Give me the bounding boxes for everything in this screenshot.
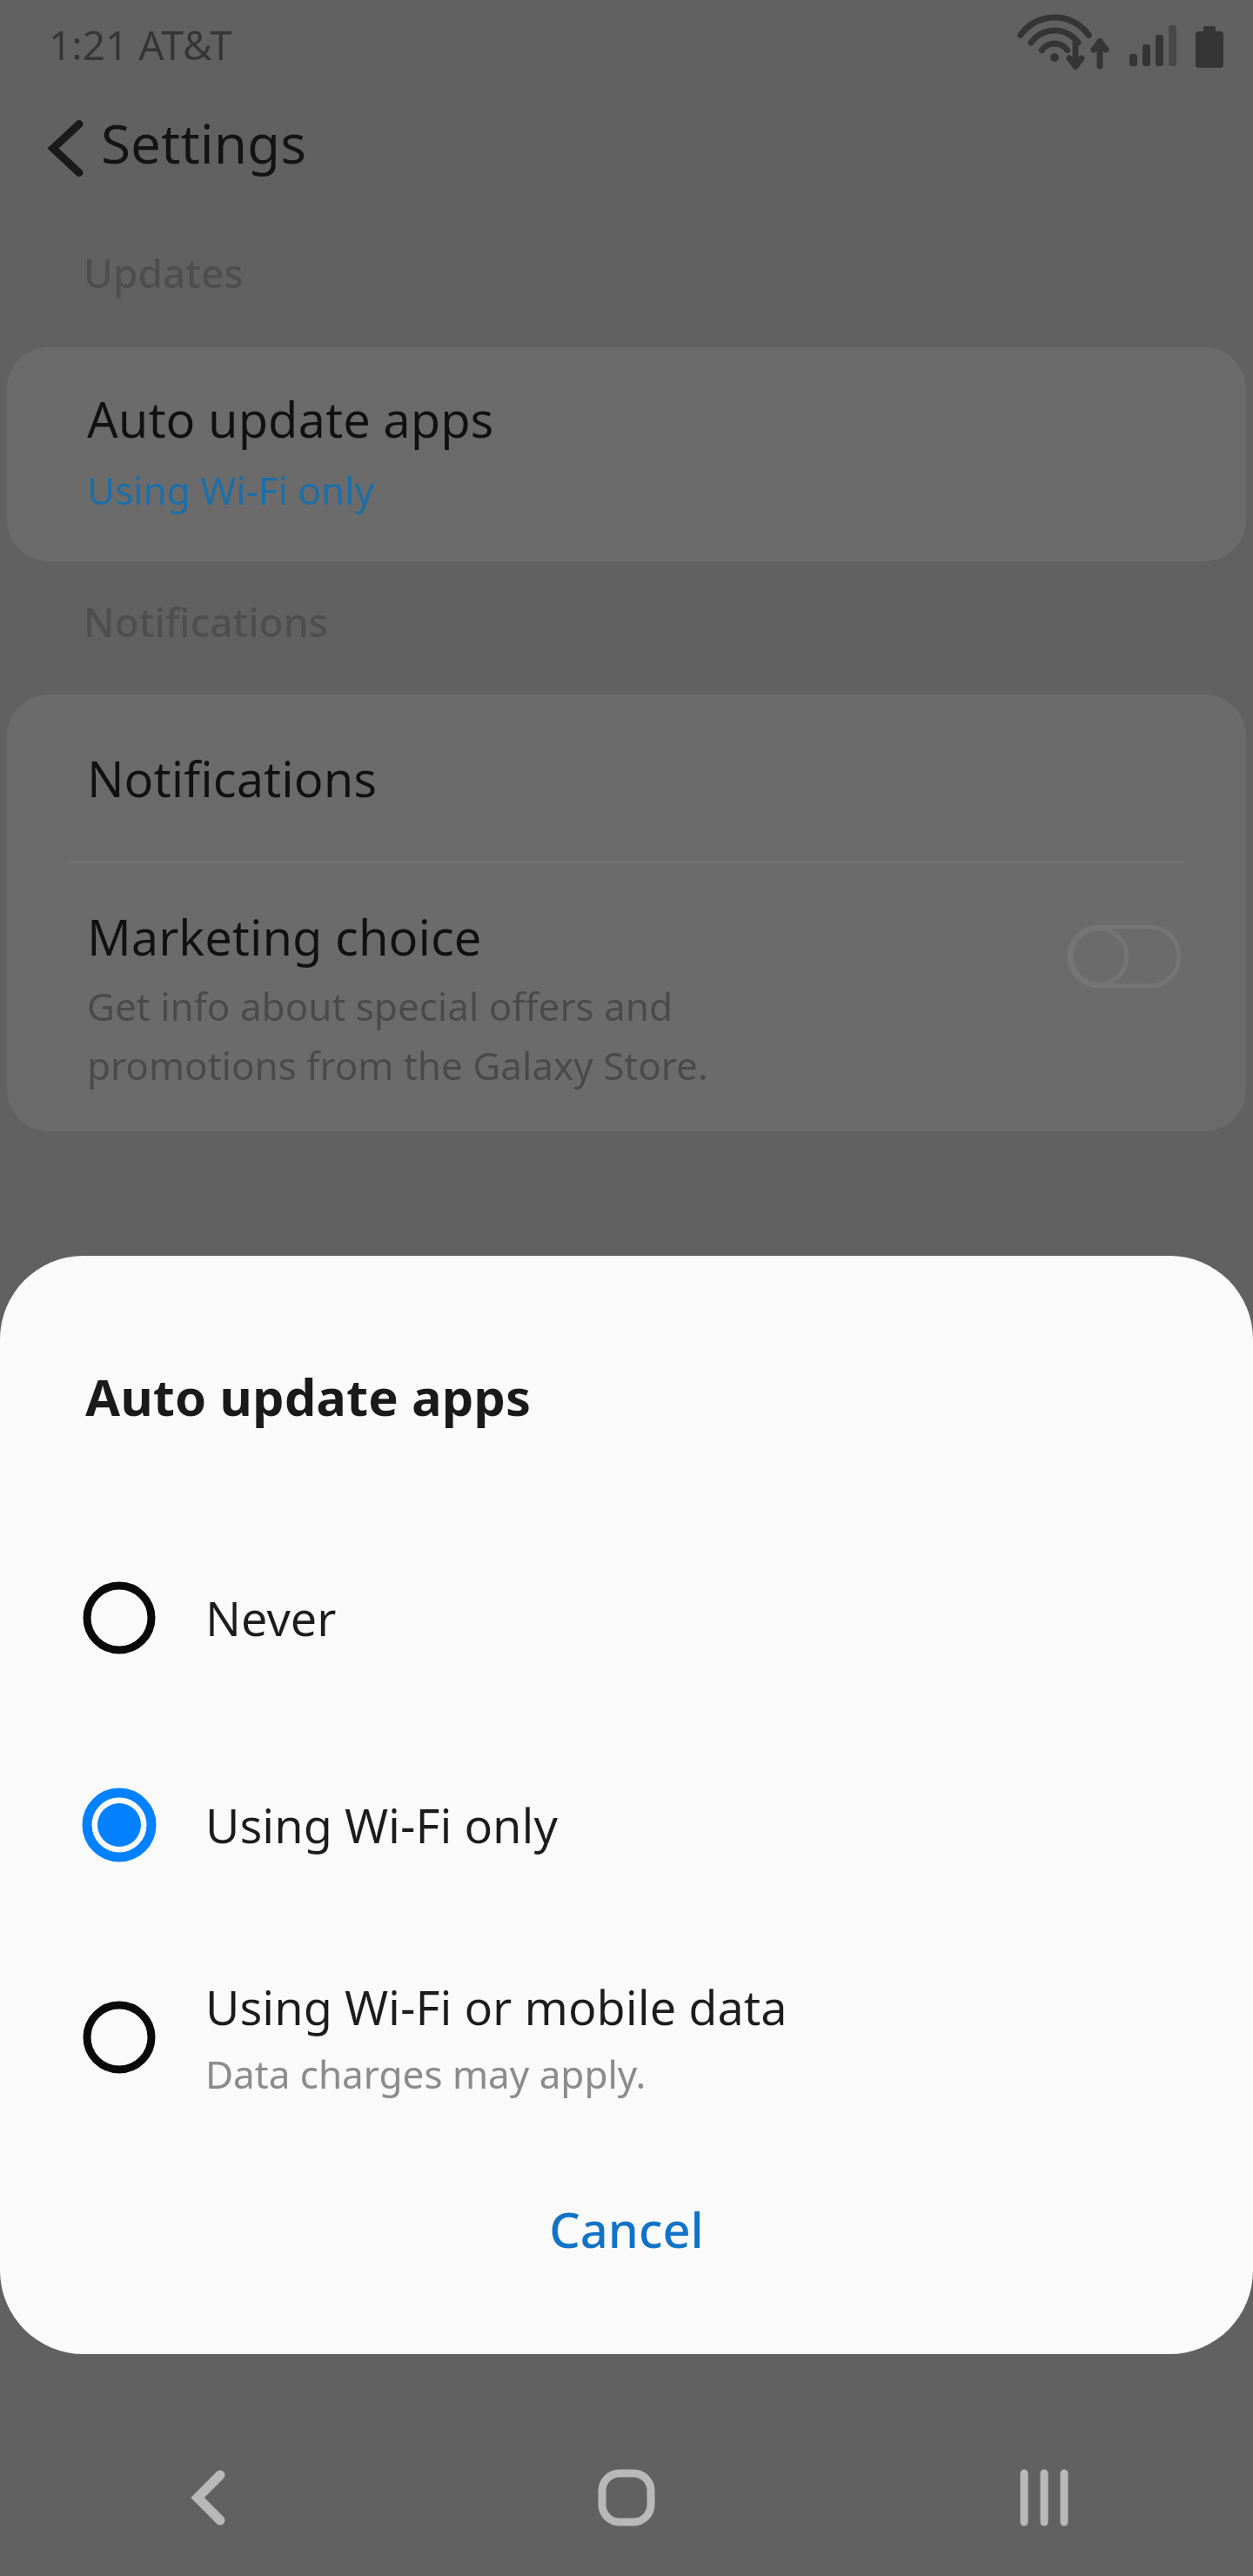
staticText: Auto update apps xyxy=(85,1362,532,1431)
staticText: Notifications xyxy=(87,745,378,811)
button[interactable]: Never xyxy=(0,1514,1253,1721)
staticText: Updates xyxy=(84,245,244,300)
staticText: Auto update apps xyxy=(87,386,494,452)
staticText: Using Wi-Fi only xyxy=(87,464,374,516)
button[interactable]: Home xyxy=(418,2419,835,2576)
other: Marketing choice toggle xyxy=(1055,917,1194,996)
staticText: Using Wi-Fi or mobile data xyxy=(205,1975,787,2039)
staticText: Using Wi-Fi only xyxy=(205,1793,558,1857)
button[interactable]: Using Wi-Fi or mobile data xyxy=(0,1929,1253,2146)
button[interactable]: Cancel xyxy=(0,2146,1253,2311)
button[interactable]: Back xyxy=(24,106,108,190)
button[interactable]: Marketing choice xyxy=(7,863,1246,1131)
button[interactable]: Auto update apps xyxy=(7,347,1246,561)
staticText: Cancel xyxy=(549,2196,704,2262)
button[interactable]: Notifications xyxy=(7,694,1246,862)
button[interactable]: Using Wi-Fi only xyxy=(0,1721,1253,1929)
staticText: Settings xyxy=(101,106,306,179)
staticText: Data charges may apply. xyxy=(205,2048,647,2100)
staticText: Never xyxy=(205,1586,337,1650)
staticText: Marketing choice xyxy=(87,903,482,969)
button[interactable]: Back xyxy=(0,2419,418,2576)
staticText: Get info about special offers and promot… xyxy=(87,980,708,1091)
staticText: 1:21 AT&T xyxy=(49,17,232,72)
button[interactable]: Recent apps xyxy=(835,2419,1253,2576)
staticText: Notifications xyxy=(84,594,328,649)
